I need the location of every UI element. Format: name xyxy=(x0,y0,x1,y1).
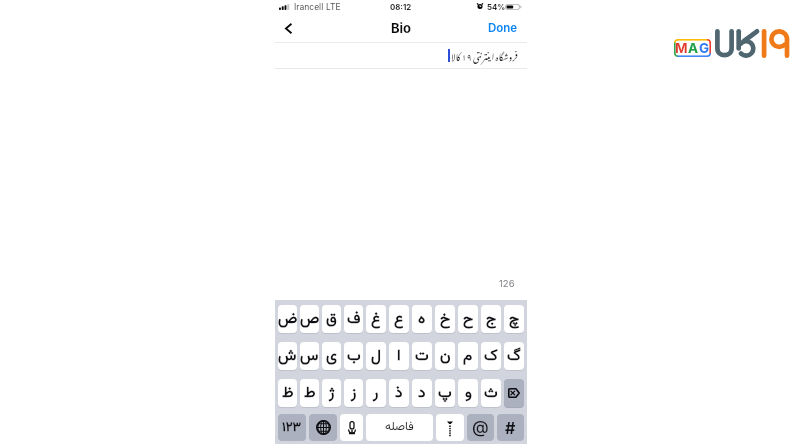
button[interactable]: ز xyxy=(344,379,363,407)
button[interactable]: ف xyxy=(344,305,363,333)
button[interactable]: ب xyxy=(344,342,363,370)
button[interactable]: ژ xyxy=(322,379,341,407)
button[interactable]: ذ xyxy=(389,379,409,407)
staticText: Done xyxy=(488,21,518,35)
staticText: ذ xyxy=(395,381,403,405)
staticText: ث xyxy=(484,381,498,405)
button[interactable]: ن xyxy=(435,342,455,370)
button[interactable]: ر xyxy=(366,379,386,407)
staticText: M xyxy=(675,40,688,56)
staticText: # xyxy=(505,418,516,437)
button[interactable]: ص xyxy=(300,305,319,333)
button[interactable]: ح xyxy=(458,305,478,333)
staticText: خ xyxy=(440,307,451,331)
staticText: غ xyxy=(371,307,381,331)
button[interactable]: ظ xyxy=(278,379,297,407)
staticText: ص xyxy=(300,307,319,331)
button[interactable]: و xyxy=(458,379,478,407)
staticText: ت xyxy=(415,344,429,368)
staticText: ۱۲۳ xyxy=(282,418,302,438)
staticText: س xyxy=(300,344,319,368)
button[interactable]: Back xyxy=(275,14,301,42)
button[interactable]: م xyxy=(458,342,478,370)
button[interactable]: ی xyxy=(322,342,341,370)
staticText: G xyxy=(699,40,710,56)
staticText: ک xyxy=(484,344,498,368)
button[interactable]: Punctuation xyxy=(436,414,464,441)
staticText: Bio xyxy=(391,20,412,36)
staticText: ض xyxy=(278,307,297,331)
staticText: و xyxy=(465,381,472,405)
button[interactable]: فاصله xyxy=(366,414,433,441)
button[interactable]: Backspace xyxy=(504,379,524,407)
staticText: 54% xyxy=(487,2,506,11)
staticText: ی xyxy=(326,344,337,368)
staticText: پ xyxy=(438,381,452,405)
button[interactable]: غ xyxy=(366,305,386,333)
button[interactable]: ش xyxy=(278,342,297,370)
staticText: ز xyxy=(351,381,357,405)
staticText: ه xyxy=(418,307,426,331)
staticText: LTE xyxy=(326,2,341,12)
button[interactable]: ه xyxy=(412,305,432,333)
button[interactable]: ا xyxy=(389,342,409,370)
staticText: ح xyxy=(463,307,474,331)
staticText: ن xyxy=(440,344,451,368)
button[interactable]: ق xyxy=(322,305,341,333)
staticText: م xyxy=(463,344,473,368)
button[interactable]: Change keyboard language xyxy=(309,414,337,441)
button[interactable]: چ xyxy=(504,305,524,333)
staticText: ژ xyxy=(329,381,335,405)
staticText: ع xyxy=(394,307,404,331)
button[interactable]: فروشگاه اینترنتی ۱۹ کالا xyxy=(275,43,527,68)
button[interactable]: س xyxy=(300,342,319,370)
staticText: ق xyxy=(326,307,337,331)
button[interactable]: د xyxy=(412,379,432,407)
button[interactable]: Done xyxy=(480,14,527,42)
button[interactable]: ک xyxy=(481,342,501,370)
staticText: ا xyxy=(397,344,401,368)
staticText: ج xyxy=(486,307,497,331)
button[interactable]: Voice input xyxy=(340,414,363,441)
staticText: فروشگاه اینترنتی ۱۹ کالا xyxy=(451,44,518,67)
staticText: چ xyxy=(509,307,520,331)
staticText: ب xyxy=(347,344,361,368)
staticText: ر xyxy=(373,381,379,405)
staticText: گ xyxy=(507,344,521,368)
staticText: د xyxy=(418,381,426,405)
button[interactable]: گ xyxy=(504,342,524,370)
staticText: ل xyxy=(371,344,381,368)
button[interactable]: ۱۲۳ xyxy=(278,414,306,441)
staticText: Irancell xyxy=(294,2,324,12)
button[interactable]: @ xyxy=(467,414,494,441)
button[interactable]: ط xyxy=(300,379,319,407)
button[interactable]: ع xyxy=(389,305,409,333)
staticText: ط xyxy=(304,381,316,405)
button[interactable]: ث xyxy=(481,379,501,407)
button[interactable]: ض xyxy=(278,305,297,333)
button[interactable]: خ xyxy=(435,305,455,333)
button[interactable]: ل xyxy=(366,342,386,370)
button[interactable]: ت xyxy=(412,342,432,370)
staticText: @ xyxy=(472,417,489,438)
button[interactable]: # xyxy=(497,414,524,441)
staticText: ف xyxy=(347,307,361,331)
staticText: 08:12 xyxy=(390,2,412,11)
button[interactable]: ج xyxy=(481,305,501,333)
staticText: 126 xyxy=(499,278,515,289)
button[interactable]: پ xyxy=(435,379,455,407)
staticText: فاصله xyxy=(385,418,414,437)
staticText: ش xyxy=(278,344,297,368)
staticText: A xyxy=(688,40,699,56)
staticText: ظ xyxy=(282,381,294,405)
